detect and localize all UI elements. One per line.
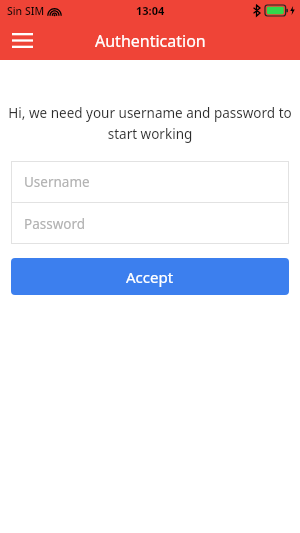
staticText: Sin SIM	[7, 4, 45, 18]
staticText: Password	[24, 215, 86, 233]
button[interactable]: Accept	[11, 258, 289, 295]
staticText: Username	[24, 173, 90, 191]
button[interactable]: Username	[11, 161, 289, 202]
staticText: Accept	[126, 267, 174, 287]
button[interactable]: Password	[11, 203, 289, 244]
staticText: Hi, we need your username and password t…	[6, 104, 294, 143]
staticText: 13:04	[136, 3, 165, 18]
button[interactable]: Open navigation menu	[0, 21, 44, 60]
staticText: Authentication	[95, 30, 206, 52]
